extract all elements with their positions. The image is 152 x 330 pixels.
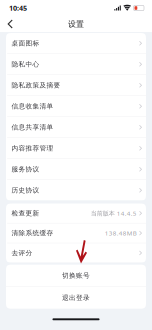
staticText: 清除系统缓存: [11, 229, 53, 237]
button[interactable]: 历史协议: [6, 180, 146, 201]
button[interactable]: 信息共享清单: [6, 117, 146, 138]
staticText: 隐私政策及摘要: [11, 81, 60, 89]
staticText: 检查更新: [11, 209, 39, 217]
button[interactable]: 清除系统缓存: [6, 223, 146, 243]
staticText: 138.48MB: [105, 229, 137, 237]
staticText: 服务协议: [11, 165, 39, 173]
staticText: 去评分: [11, 249, 32, 257]
button[interactable]: 切换账号: [6, 265, 146, 286]
button[interactable]: 隐私中心: [6, 54, 146, 75]
button[interactable]: 检查更新: [6, 203, 146, 223]
button[interactable]: 去评分: [6, 243, 146, 263]
staticText: 隐私中心: [11, 60, 39, 68]
staticText: 切换账号: [62, 271, 90, 280]
staticText: 设置: [68, 19, 84, 29]
button[interactable]: 桌面图标: [6, 33, 146, 54]
button[interactable]: 退出登录: [6, 287, 146, 309]
button[interactable]: 服务协议: [6, 159, 146, 180]
button[interactable]: 返回: [0, 16, 20, 32]
button[interactable]: 内容推荐管理: [6, 138, 146, 159]
staticText: 10:45: [9, 3, 27, 13]
staticText: 桌面图标: [11, 39, 39, 47]
staticText: 内容推荐管理: [11, 144, 53, 152]
staticText: 信息收集清单: [11, 102, 53, 110]
button[interactable]: 隐私政策及摘要: [6, 75, 146, 96]
staticText: 历史协议: [11, 186, 39, 194]
staticText: 信息共享清单: [11, 123, 53, 131]
button[interactable]: 信息收集清单: [6, 96, 146, 117]
staticText: 当前版本 14.4.5: [91, 209, 137, 217]
staticText: 退出登录: [62, 294, 90, 302]
